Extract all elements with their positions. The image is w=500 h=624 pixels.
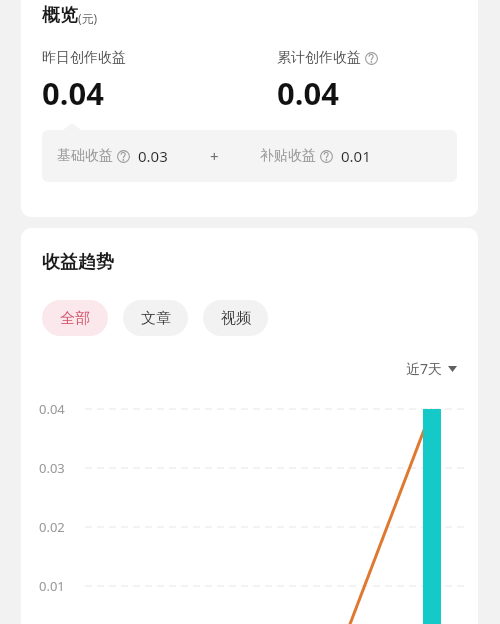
- staticText: 累计创作收益: [277, 49, 361, 67]
- staticText: 0.03: [138, 146, 168, 166]
- staticText: 昨日创作收益: [42, 49, 126, 67]
- button[interactable]: 选择时间范围: [404, 356, 459, 381]
- button[interactable]: 累计创作收益: [277, 49, 378, 67]
- staticText: +: [210, 146, 219, 166]
- staticText: 0.03: [39, 459, 65, 477]
- other: 累计创作收益说明: [365, 52, 378, 65]
- staticText: 概览: [42, 4, 78, 27]
- button[interactable]: 视频: [203, 300, 268, 336]
- staticText: 全部: [60, 309, 90, 328]
- button[interactable]: 全部: [42, 300, 108, 336]
- staticText: 0.01: [39, 577, 65, 595]
- button[interactable]: 文章: [123, 300, 188, 336]
- staticText: 0.04: [42, 72, 104, 114]
- button[interactable]: 补贴收益: [260, 146, 371, 166]
- staticText: 0.02: [39, 518, 65, 536]
- staticText: 0.04: [39, 400, 65, 418]
- staticText: 基础收益: [57, 147, 113, 165]
- button[interactable]: 基础收益: [57, 146, 168, 166]
- staticText: 视频: [221, 309, 251, 328]
- staticText: 文章: [141, 309, 171, 328]
- staticText: 0.04: [277, 72, 339, 114]
- staticText: 近7天: [406, 359, 443, 378]
- staticText: 0.01: [341, 146, 371, 166]
- staticText: (元): [78, 10, 98, 26]
- staticText: 补贴收益: [260, 147, 316, 165]
- staticText: 收益趋势: [42, 251, 114, 274]
